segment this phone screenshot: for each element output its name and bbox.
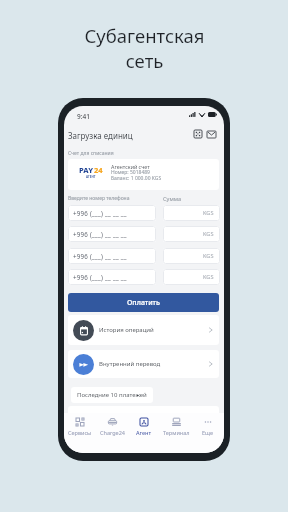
staticText: Номер: 5018489 bbox=[111, 169, 150, 176]
button[interactable]: KGS bbox=[163, 248, 220, 264]
staticText: Charge24 bbox=[100, 429, 125, 436]
staticText: +996 (___) __ __ __ bbox=[73, 273, 127, 281]
button[interactable]: PAY bbox=[68, 159, 219, 190]
staticText: Оплатить bbox=[127, 298, 160, 308]
button[interactable]: Внутренний перевод bbox=[68, 350, 219, 378]
button[interactable]: KGS bbox=[163, 226, 220, 242]
staticText: 9:41 bbox=[77, 112, 90, 121]
button[interactable]: Charge24 bbox=[96, 418, 128, 436]
staticText: Субагентская сеть bbox=[84, 23, 205, 73]
staticText: 24 bbox=[94, 165, 103, 175]
staticText: Баланс: 1 000.00 KGS bbox=[111, 175, 162, 182]
staticText: Введите номер телефона bbox=[68, 195, 130, 202]
staticText: Еще bbox=[202, 429, 214, 436]
staticText: +996 (___) __ __ __ bbox=[73, 230, 127, 238]
button[interactable]: История операций bbox=[68, 315, 219, 345]
staticText: +996 (___) __ __ __ bbox=[73, 209, 127, 217]
button[interactable]: Оплатить bbox=[68, 293, 219, 312]
staticText: Загрузка единиц bbox=[68, 130, 133, 141]
button[interactable]: Scan QR code bbox=[191, 127, 205, 141]
staticText: Агентский счет bbox=[111, 163, 150, 170]
staticText: Внутренний перевод bbox=[99, 360, 161, 368]
staticText: Последние 10 платежей bbox=[77, 391, 147, 399]
button[interactable]: Еще bbox=[192, 418, 224, 436]
button[interactable]: Messages bbox=[204, 127, 218, 141]
staticText: KGS bbox=[203, 230, 214, 238]
staticText: Агент bbox=[136, 429, 152, 436]
staticText: KGS bbox=[203, 209, 214, 217]
button[interactable]: Последние 10 платежей bbox=[71, 387, 153, 403]
staticText: KGS bbox=[203, 273, 214, 281]
staticText: +996 (___) __ __ __ bbox=[73, 252, 127, 260]
button[interactable]: +996 (___) __ __ __ bbox=[68, 248, 156, 264]
button[interactable]: KGS bbox=[163, 205, 220, 221]
button[interactable]: +996 (___) __ __ __ bbox=[68, 205, 156, 221]
button[interactable]: Агент bbox=[128, 418, 160, 436]
staticText: KGS bbox=[203, 252, 214, 260]
staticText: Сумма bbox=[163, 195, 182, 203]
button[interactable]: Сервисы bbox=[64, 418, 96, 436]
staticText: Счет для списания bbox=[68, 150, 114, 157]
staticText: Терминал bbox=[163, 429, 190, 436]
staticText: История операций bbox=[99, 326, 154, 334]
button[interactable]: Терминал bbox=[160, 418, 192, 436]
staticText: АГЕНТ bbox=[86, 175, 96, 179]
button[interactable]: KGS bbox=[163, 269, 220, 285]
staticText: PAY bbox=[79, 165, 94, 175]
button[interactable]: +996 (___) __ __ __ bbox=[68, 226, 156, 242]
staticText: Сервисы bbox=[68, 429, 92, 436]
button[interactable]: +996 (___) __ __ __ bbox=[68, 269, 156, 285]
